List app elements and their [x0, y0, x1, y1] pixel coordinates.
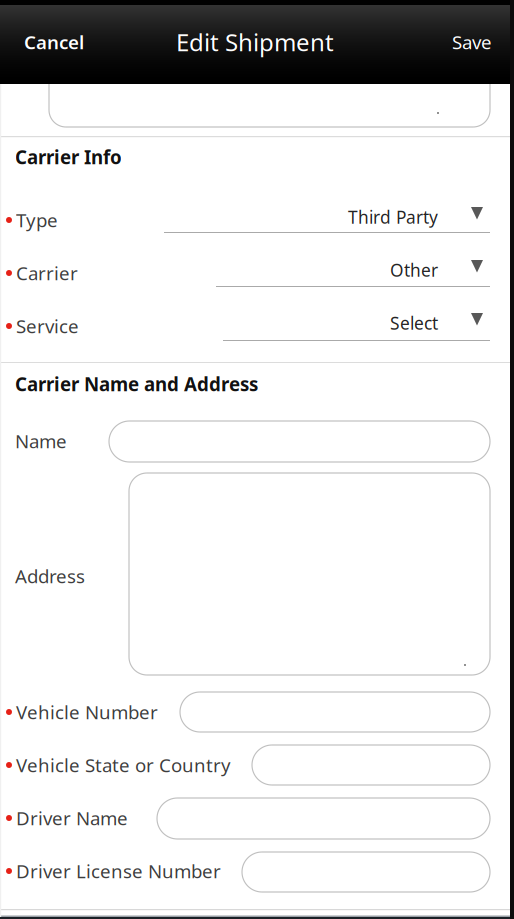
button[interactable]: Name: [0, 0, 514, 919]
staticText: Edit Shipment: [176, 26, 334, 58]
staticText: Driver License Number: [16, 859, 221, 883]
button[interactable]: Save: [0, 0, 514, 919]
staticText: Address: [15, 564, 85, 588]
staticText: Vehicle Number: [16, 700, 158, 724]
staticText: Carrier Name and Address: [15, 372, 258, 396]
staticText: Driver Name: [16, 806, 128, 830]
button[interactable]: Vehicle State or Country: [0, 0, 514, 919]
staticText: Name: [15, 429, 67, 453]
button[interactable]: Address: [0, 0, 514, 919]
staticText: Service: [16, 314, 79, 338]
staticText: Carrier: [16, 261, 78, 285]
staticText: Vehicle State or Country: [16, 753, 231, 777]
staticText: Third Party: [348, 205, 438, 228]
button[interactable]: Driver License Number: [0, 0, 514, 919]
button[interactable]: Cancel: [0, 0, 514, 919]
button[interactable]: Driver Name: [0, 0, 514, 919]
staticText: Save: [452, 30, 492, 54]
staticText: Cancel: [24, 30, 84, 54]
button[interactable]: Type: [0, 0, 514, 919]
button[interactable]: Carrier: [0, 0, 514, 919]
staticText: Other: [390, 258, 438, 281]
staticText: Type: [16, 208, 58, 232]
staticText: Carrier Info: [15, 145, 122, 169]
button[interactable]: Service: [0, 0, 514, 919]
button[interactable]: Vehicle Number: [0, 0, 514, 919]
staticText: Select: [390, 311, 438, 334]
